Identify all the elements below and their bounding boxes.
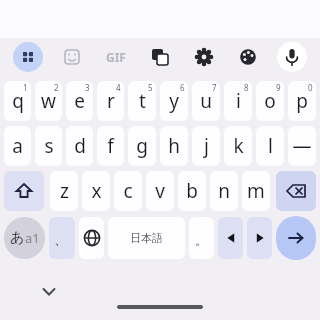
staticText: u: [200, 88, 212, 114]
button[interactable]: l: [256, 126, 284, 166]
staticText: 4: [116, 82, 121, 93]
button[interactable]: o: [256, 81, 284, 121]
button[interactable]: m: [242, 171, 270, 211]
staticText: 5: [148, 82, 153, 93]
staticText: c: [123, 178, 133, 204]
staticText: 2: [54, 82, 59, 93]
staticText: p: [296, 88, 308, 114]
button[interactable]: Stickers: [50, 38, 94, 76]
staticText: 1: [23, 82, 28, 93]
button[interactable]: d: [66, 126, 93, 166]
button[interactable]: Move cursor right: [247, 217, 272, 259]
button[interactable]: あ: [4, 217, 45, 259]
button[interactable]: e: [66, 81, 93, 121]
button[interactable]: Move cursor left: [218, 217, 243, 259]
staticText: 9: [276, 82, 281, 93]
button[interactable]: Settings: [182, 38, 226, 76]
button[interactable]: r: [97, 81, 124, 121]
staticText: 7: [212, 82, 217, 93]
staticText: r: [107, 88, 115, 114]
staticText: w: [41, 88, 56, 114]
staticText: n: [218, 178, 230, 204]
staticText: —: [292, 133, 312, 159]
button[interactable]: Hide keyboard: [36, 278, 62, 304]
staticText: 3: [85, 82, 90, 93]
button[interactable]: v: [146, 171, 174, 211]
staticText: k: [233, 133, 244, 159]
button[interactable]: p: [288, 81, 316, 121]
staticText: 0: [308, 82, 313, 93]
staticText: a1: [25, 229, 40, 247]
button[interactable]: 、: [49, 217, 75, 259]
button[interactable]: GIF: [94, 38, 138, 76]
staticText: v: [155, 178, 165, 204]
staticText: t: [139, 88, 146, 114]
button[interactable]: Voice input: [270, 38, 314, 76]
button[interactable]: q: [4, 81, 31, 121]
button[interactable]: u: [192, 81, 220, 121]
button[interactable]: n: [210, 171, 238, 211]
staticText: q: [12, 88, 24, 114]
staticText: z: [60, 178, 69, 204]
staticText: j: [204, 133, 209, 159]
staticText: i: [236, 88, 241, 114]
button[interactable]: y: [160, 81, 188, 121]
staticText: x: [91, 178, 102, 204]
button[interactable]: k: [224, 126, 252, 166]
button[interactable]: i: [224, 81, 252, 121]
staticText: o: [264, 88, 276, 114]
button[interactable]: Translate: [138, 38, 182, 76]
staticText: e: [74, 88, 85, 114]
button[interactable]: t: [128, 81, 156, 121]
button[interactable]: s: [35, 126, 62, 166]
button[interactable]: 。: [189, 217, 214, 259]
button[interactable]: Apps: [6, 38, 50, 76]
button[interactable]: —: [288, 126, 316, 166]
button[interactable]: z: [50, 171, 78, 211]
staticText: y: [169, 88, 179, 114]
button[interactable]: g: [128, 126, 156, 166]
staticText: s: [44, 133, 54, 159]
button[interactable]: b: [178, 171, 206, 211]
button[interactable]: Backspace: [276, 171, 316, 211]
staticText: m: [247, 178, 265, 204]
button[interactable]: Enter: [276, 216, 316, 260]
button[interactable]: Change language: [79, 217, 104, 259]
button[interactable]: w: [35, 81, 62, 121]
staticText: 、: [54, 231, 68, 249]
staticText: 6: [180, 82, 185, 93]
button[interactable]: j: [192, 126, 220, 166]
staticText: b: [186, 178, 198, 204]
staticText: f: [107, 133, 114, 159]
staticText: g: [136, 133, 148, 159]
staticText: 8: [244, 82, 249, 93]
button[interactable]: 日本語: [108, 217, 185, 259]
button[interactable]: a: [4, 126, 31, 166]
button[interactable]: Themes: [226, 38, 270, 76]
staticText: a: [12, 133, 23, 159]
button[interactable]: Shift: [4, 171, 44, 211]
button[interactable]: c: [114, 171, 142, 211]
button[interactable]: h: [160, 126, 188, 166]
button[interactable]: f: [97, 126, 124, 166]
staticText: あ: [10, 229, 25, 247]
staticText: d: [74, 133, 86, 159]
staticText: h: [168, 133, 180, 159]
staticText: GIF: [106, 49, 126, 65]
staticText: 日本語: [130, 231, 163, 245]
button[interactable]: x: [82, 171, 110, 211]
staticText: l: [268, 133, 273, 159]
staticText: 。: [195, 232, 208, 248]
